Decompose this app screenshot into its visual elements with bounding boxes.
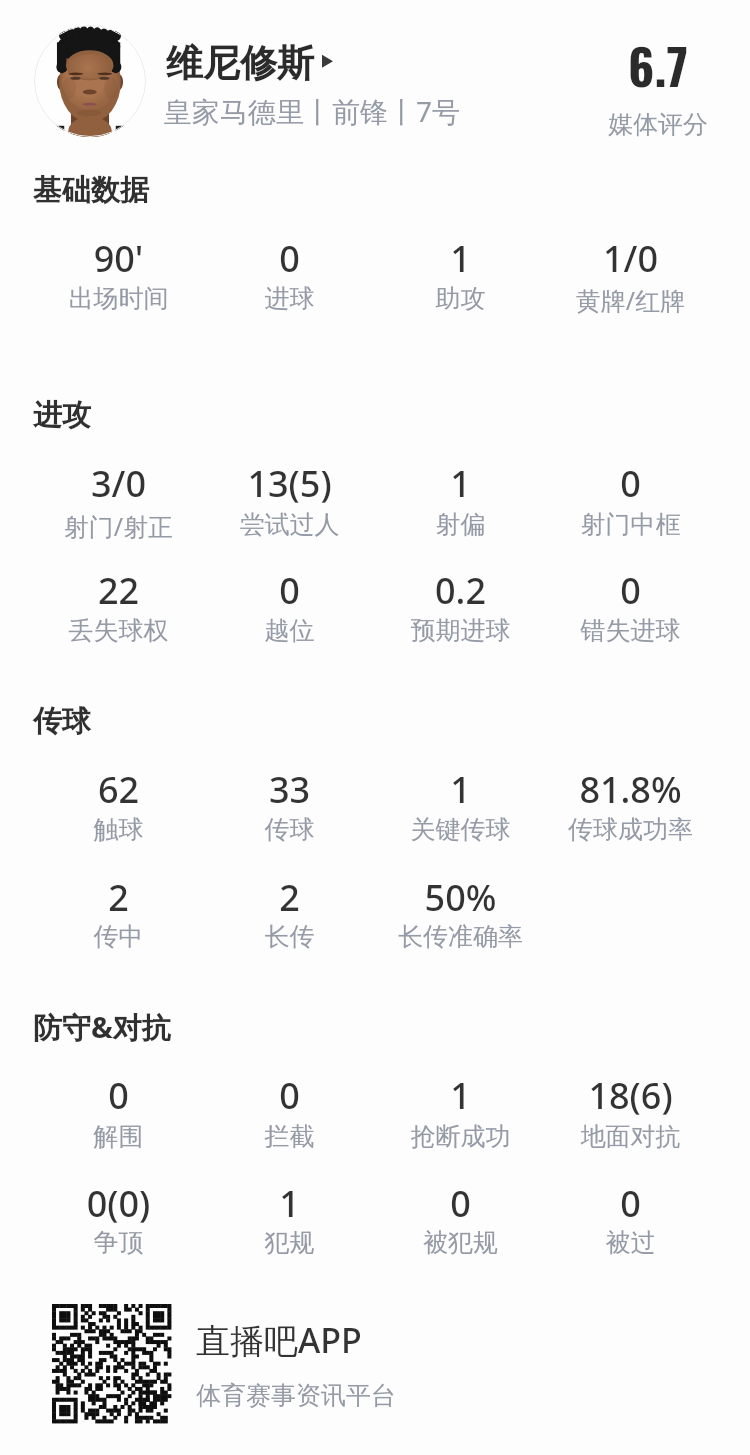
button[interactable]: 防守&对抗 <box>33 1007 171 1047</box>
button[interactable]: 3/0 <box>33 449 204 539</box>
staticText: 90' <box>33 234 204 283</box>
button[interactable]: 0 <box>375 1169 546 1257</box>
staticText: 传球成功率 <box>545 814 716 845</box>
staticText: 0 <box>33 1071 204 1120</box>
staticText: 防守&对抗 <box>33 1007 171 1047</box>
button[interactable]: 传球 <box>33 703 91 740</box>
staticText: 媒体评分 <box>578 109 738 140</box>
staticText: 长传 <box>204 921 375 952</box>
staticText: 射偏 <box>375 509 546 540</box>
staticText: 被犯规 <box>375 1227 546 1258</box>
staticText: 拦截 <box>204 1121 375 1152</box>
staticText: 越位 <box>204 615 375 646</box>
button[interactable]: 33 <box>204 755 375 844</box>
staticText: 传中 <box>33 921 204 952</box>
staticText: 直播吧APP <box>196 1317 362 1363</box>
staticText: 体育赛事资讯平台 <box>196 1380 396 1411</box>
staticText: 射门/射正 <box>33 509 204 543</box>
staticText: 0 <box>204 566 375 615</box>
button[interactable]: QR code <box>52 1304 171 1423</box>
button[interactable]: 基础数据 <box>33 172 149 209</box>
staticText: 1 <box>375 1071 546 1120</box>
staticText: 传球 <box>33 703 91 740</box>
staticText: 射门中框 <box>545 509 716 540</box>
staticText: 进攻 <box>33 397 91 434</box>
button[interactable]: 62 <box>33 755 204 844</box>
staticText: 1 <box>204 1179 375 1228</box>
button[interactable]: 13(5) <box>204 449 375 539</box>
button[interactable]: 0 <box>204 224 375 313</box>
button[interactable]: 1 <box>204 1169 375 1257</box>
button[interactable]: 1 <box>375 224 546 313</box>
staticText: 解围 <box>33 1121 204 1152</box>
button[interactable]: 2 <box>33 863 204 951</box>
staticText: 关键传球 <box>375 814 546 845</box>
button[interactable]: 81.8% <box>545 755 716 844</box>
staticText: 传球 <box>204 814 375 845</box>
staticText: 1 <box>375 459 546 508</box>
button[interactable]: 0 <box>545 449 716 539</box>
button[interactable]: 0 <box>545 1169 716 1257</box>
staticText: 2 <box>204 873 375 922</box>
staticText: 50% <box>375 873 546 922</box>
staticText: 0.2 <box>375 566 546 615</box>
button[interactable]: 直播吧APP <box>196 1317 362 1363</box>
staticText: 出场时间 <box>33 283 204 314</box>
staticText: 0 <box>375 1179 546 1228</box>
button[interactable]: 50% <box>375 863 546 951</box>
staticText: 长传准确率 <box>375 921 546 952</box>
button[interactable]: 90' <box>33 224 204 313</box>
staticText: 错失进球 <box>545 615 716 646</box>
button[interactable]: 1 <box>375 449 546 539</box>
staticText: 0 <box>204 1071 375 1120</box>
button[interactable]: 0 <box>33 1061 204 1151</box>
staticText: 丢失球权 <box>33 615 204 646</box>
staticText: 81.8% <box>545 765 716 814</box>
staticText: 基础数据 <box>33 172 149 209</box>
staticText: 0(0) <box>33 1179 204 1228</box>
staticText: 22 <box>33 566 204 615</box>
staticText: 62 <box>33 765 204 814</box>
button[interactable]: 进攻 <box>33 397 91 434</box>
staticText: 进球 <box>204 283 375 314</box>
button[interactable]: 0 <box>204 556 375 645</box>
staticText: 地面对抗 <box>545 1121 716 1152</box>
staticText: 黄牌/红牌 <box>545 283 716 317</box>
button[interactable]: 维尼修斯 <box>166 40 333 87</box>
staticText: 预期进球 <box>375 615 546 646</box>
staticText: 0 <box>545 1179 716 1228</box>
staticText: 触球 <box>33 814 204 845</box>
button[interactable]: 22 <box>33 556 204 645</box>
button[interactable]: 2 <box>204 863 375 951</box>
staticText: 被过 <box>545 1227 716 1258</box>
staticText: 0 <box>204 234 375 283</box>
staticText: 1 <box>375 765 546 814</box>
button[interactable]: 0.2 <box>375 556 546 645</box>
staticText: 6.7 <box>578 29 738 102</box>
staticText: 皇家马德里丨前锋丨7号 <box>164 92 461 130</box>
button[interactable]: 6.7 <box>578 40 738 140</box>
staticText: 维尼修斯 <box>166 40 314 87</box>
staticText: 抢断成功 <box>375 1121 546 1152</box>
staticText: 0 <box>545 459 716 508</box>
staticText: 2 <box>33 873 204 922</box>
staticText: 争顶 <box>33 1227 204 1258</box>
staticText: 18(6) <box>545 1071 716 1120</box>
staticText: 1/0 <box>545 234 716 283</box>
button[interactable]: 0(0) <box>33 1169 204 1257</box>
staticText: 助攻 <box>375 283 546 314</box>
staticText: 33 <box>204 765 375 814</box>
staticText: 犯规 <box>204 1227 375 1258</box>
button[interactable]: 18(6) <box>545 1061 716 1151</box>
staticText: 3/0 <box>33 459 204 508</box>
button[interactable]: Player photo <box>34 25 146 137</box>
button[interactable]: 0 <box>545 556 716 645</box>
button[interactable]: 1/0 <box>545 224 716 313</box>
staticText: 尝试过人 <box>204 509 375 540</box>
staticText: 13(5) <box>204 459 375 508</box>
staticText: 1 <box>375 234 546 283</box>
button[interactable]: 1 <box>375 755 546 844</box>
button[interactable]: 0 <box>204 1061 375 1151</box>
staticText: 0 <box>545 566 716 615</box>
button[interactable]: 1 <box>375 1061 546 1151</box>
